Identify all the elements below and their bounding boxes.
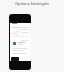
button[interactable]: App icon: [13, 42, 16, 45]
button[interactable]: Primary action: [11, 57, 19, 61]
staticText: Options Strategies: [0, 1, 64, 6]
button[interactable]: App icon: [9, 14, 31, 70]
